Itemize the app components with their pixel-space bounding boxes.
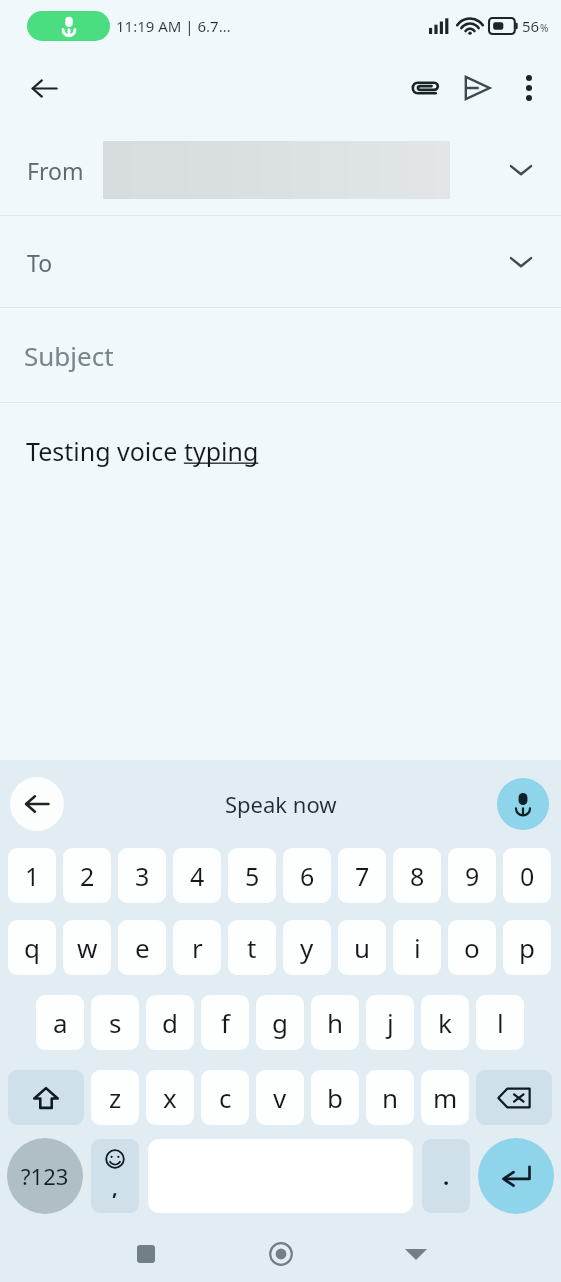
button[interactable]: c <box>201 1070 249 1125</box>
staticText: 3 <box>135 859 150 893</box>
staticText: q <box>24 930 40 965</box>
staticText: 6 <box>300 859 315 893</box>
button[interactable]: From <box>0 124 561 216</box>
button[interactable]: f <box>201 995 249 1050</box>
staticText: j <box>387 1005 394 1040</box>
button[interactable]: Subject <box>0 308 561 403</box>
staticText: f <box>221 1005 230 1040</box>
staticText: h <box>327 1005 344 1040</box>
button[interactable]: y <box>283 920 331 975</box>
button[interactable]: ?123 <box>7 1138 83 1214</box>
staticText: g <box>272 1005 288 1040</box>
staticText: Speak now <box>225 789 337 819</box>
staticText: a <box>53 1005 68 1040</box>
staticText: w <box>77 930 98 965</box>
staticText: 1 <box>25 859 40 893</box>
staticText: 11:19 AM | 6.7… <box>116 16 231 36</box>
button[interactable]: Attach file <box>399 62 451 114</box>
button[interactable]: Recent apps <box>124 1232 168 1276</box>
button[interactable]: i <box>393 920 441 975</box>
button[interactable]: 9 <box>448 848 496 903</box>
staticText: t <box>247 930 257 965</box>
button[interactable]: k <box>421 995 469 1050</box>
button[interactable]: b <box>311 1070 359 1125</box>
button[interactable]: n <box>366 1070 414 1125</box>
button[interactable]: 6 <box>283 848 331 903</box>
button[interactable]: q <box>8 920 56 975</box>
button[interactable]: t <box>228 920 276 975</box>
button[interactable]: Back <box>20 64 68 112</box>
button[interactable]: v <box>256 1070 304 1125</box>
button[interactable]: w <box>63 920 111 975</box>
button[interactable]: 0 <box>503 848 551 903</box>
button[interactable]: To <box>0 216 561 308</box>
staticText: l <box>497 1005 504 1040</box>
button[interactable]: Microphone <box>497 778 549 830</box>
staticText: m <box>433 1080 458 1115</box>
staticText: e <box>135 930 150 965</box>
staticText: % <box>540 21 549 35</box>
button[interactable]: Home <box>259 1232 303 1276</box>
button[interactable]: 1 <box>8 848 56 903</box>
staticText: p <box>519 930 535 965</box>
staticText: v <box>273 1080 287 1115</box>
button[interactable]: m <box>421 1070 469 1125</box>
button[interactable]: 7 <box>338 848 386 903</box>
staticText: k <box>438 1005 452 1040</box>
staticText: 7 <box>355 859 370 893</box>
staticText: Testing voice typing <box>26 434 259 468</box>
button[interactable]: Close voice input <box>10 777 64 831</box>
staticText: c <box>219 1080 232 1115</box>
button[interactable]: . <box>422 1139 470 1213</box>
button[interactable]: More options <box>503 62 555 114</box>
button[interactable]: j <box>366 995 414 1050</box>
button[interactable]: l <box>476 995 524 1050</box>
button[interactable]: Emoji and comma <box>91 1139 139 1213</box>
staticText: i <box>414 930 421 965</box>
button[interactable]: Testing voice typing <box>0 403 561 498</box>
staticText: Subject <box>24 338 114 373</box>
button[interactable]: o <box>448 920 496 975</box>
staticText: r <box>192 930 203 965</box>
button[interactable]: z <box>91 1070 139 1125</box>
staticText: 56 <box>522 16 540 36</box>
button[interactable]: 3 <box>118 848 166 903</box>
staticText: y <box>300 930 314 965</box>
staticText: x <box>163 1080 177 1115</box>
staticText: From <box>27 155 84 186</box>
staticText: 0 <box>520 859 535 893</box>
button[interactable]: g <box>256 995 304 1050</box>
staticText: b <box>327 1080 343 1115</box>
button[interactable]: Send <box>451 62 503 114</box>
button[interactable]: p <box>503 920 551 975</box>
button[interactable]: 4 <box>173 848 221 903</box>
staticText: s <box>109 1005 122 1040</box>
button[interactable]: s <box>91 995 139 1050</box>
staticText: , <box>112 1174 118 1201</box>
staticText: 9 <box>465 859 480 893</box>
staticText: To <box>27 247 53 278</box>
staticText: o <box>464 930 480 965</box>
button[interactable]: Backspace <box>476 1070 552 1125</box>
button[interactable]: 5 <box>228 848 276 903</box>
staticText: 5 <box>245 859 260 893</box>
staticText: ?123 <box>21 1161 69 1191</box>
button[interactable]: e <box>118 920 166 975</box>
button[interactable]: a <box>36 995 84 1050</box>
button[interactable]: h <box>311 995 359 1050</box>
staticText: n <box>382 1080 399 1115</box>
button[interactable]: d <box>146 995 194 1050</box>
staticText: u <box>354 930 371 965</box>
button[interactable]: Shift <box>8 1070 84 1125</box>
button[interactable]: x <box>146 1070 194 1125</box>
button[interactable]: 2 <box>63 848 111 903</box>
staticText: . <box>443 1161 450 1191</box>
button[interactable]: Hide keyboard <box>394 1232 438 1276</box>
button[interactable]: Enter <box>478 1138 554 1214</box>
staticText: z <box>109 1080 122 1115</box>
button[interactable]: u <box>338 920 386 975</box>
button[interactable]: 8 <box>393 848 441 903</box>
staticText: 4 <box>190 859 205 893</box>
button[interactable]: r <box>173 920 221 975</box>
